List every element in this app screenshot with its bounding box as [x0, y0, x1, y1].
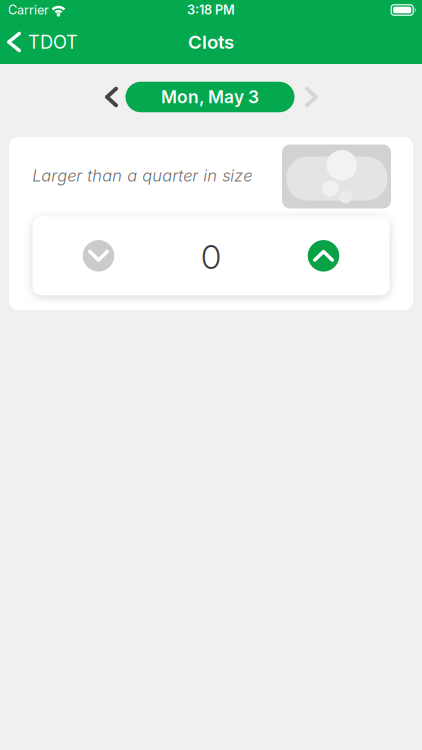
button[interactable]: Increase [257, 216, 389, 295]
staticText: Mon, May 3 [161, 86, 259, 107]
staticText: Carrier [8, 2, 49, 18]
button[interactable]: Mon, May 3 [125, 80, 294, 114]
button[interactable]: Previous day [94, 80, 128, 114]
button[interactable]: TDOT [0, 20, 88, 64]
staticText: TDOT [28, 31, 78, 53]
staticText: 0 [201, 237, 221, 277]
staticText: Larger than a quarter in size [32, 165, 252, 185]
button[interactable]: Decrease [32, 216, 164, 295]
staticText: Clots [188, 31, 234, 53]
button[interactable]: Next day [294, 80, 328, 114]
staticText: 3:18 PM [187, 2, 235, 18]
